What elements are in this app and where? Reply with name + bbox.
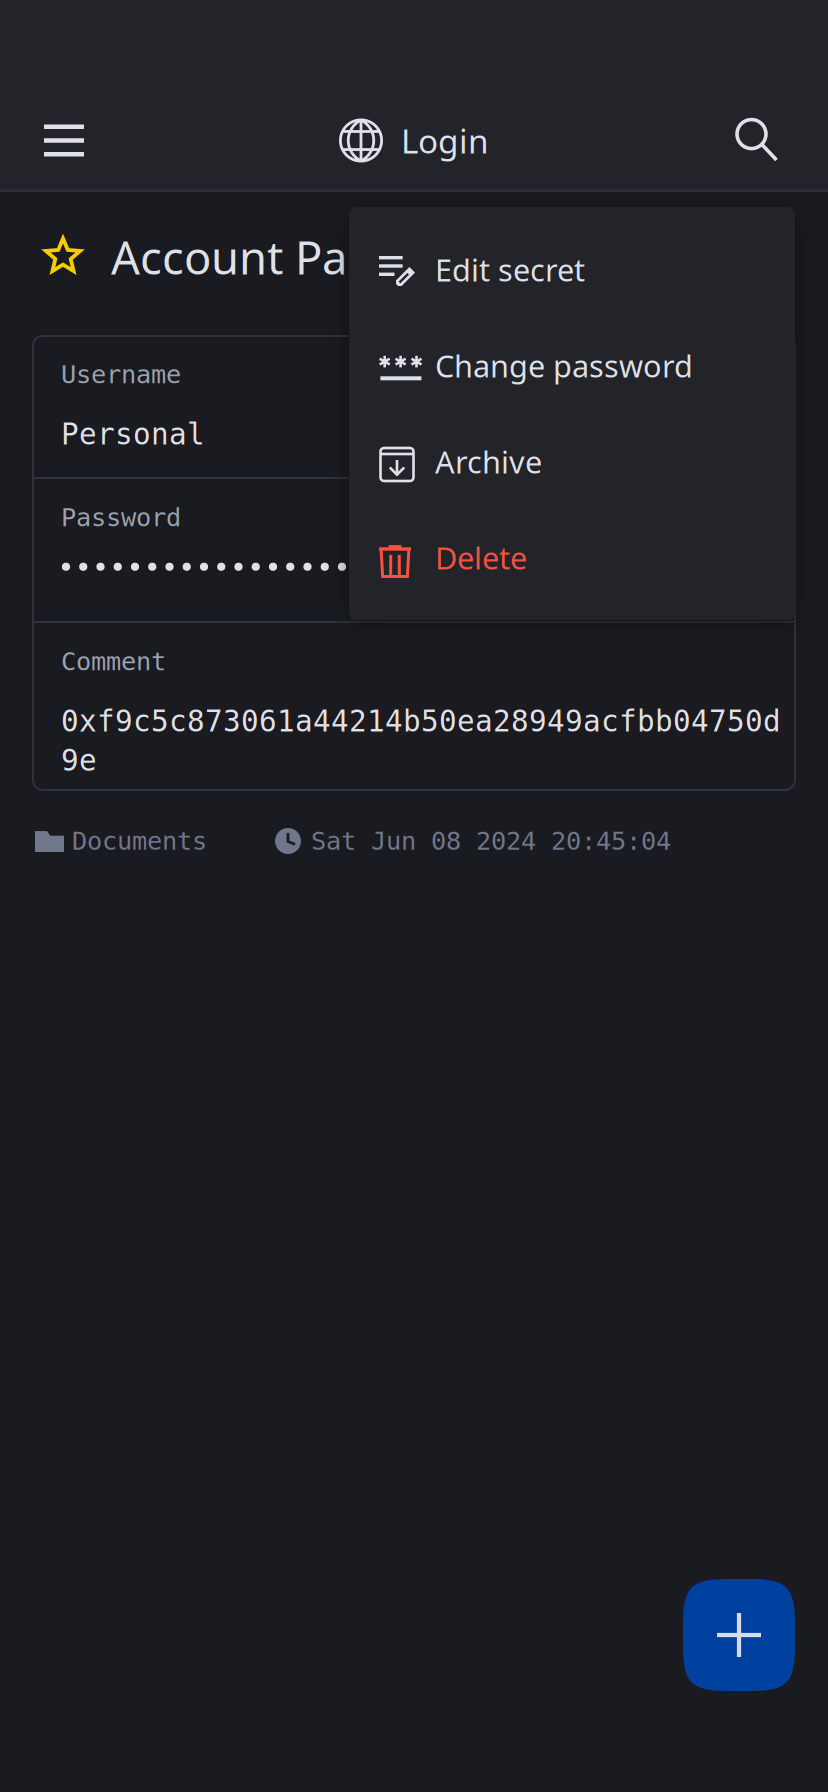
- button[interactable]: Edit secret: [349, 221, 795, 317]
- button[interactable]: Search: [720, 92, 808, 189]
- staticText: Archive: [435, 441, 542, 482]
- staticText: Account Password: [111, 227, 500, 287]
- staticText: Edit secret: [435, 249, 585, 290]
- button[interactable]: Archive: [349, 413, 795, 509]
- button[interactable]: Add: [683, 1579, 795, 1691]
- staticText: Comment: [61, 647, 166, 676]
- button[interactable]: Menu: [20, 92, 108, 189]
- staticText: Login: [401, 118, 489, 163]
- staticText: Personal: [61, 418, 205, 451]
- button[interactable]: Delete: [349, 509, 795, 605]
- button[interactable]: Change password: [349, 317, 795, 413]
- staticText: Sat Jun 08 2024 20:45:04: [311, 827, 671, 855]
- staticText: Delete: [435, 537, 527, 578]
- staticText: Username: [61, 360, 181, 389]
- staticText: 9e: [61, 744, 97, 777]
- staticText: 0xf9c5c873061a44214b50ea28949acfbb04750d: [61, 705, 781, 738]
- staticText: Documents: [72, 827, 207, 855]
- staticText: Password: [61, 503, 181, 532]
- staticText: Change password: [435, 345, 693, 386]
